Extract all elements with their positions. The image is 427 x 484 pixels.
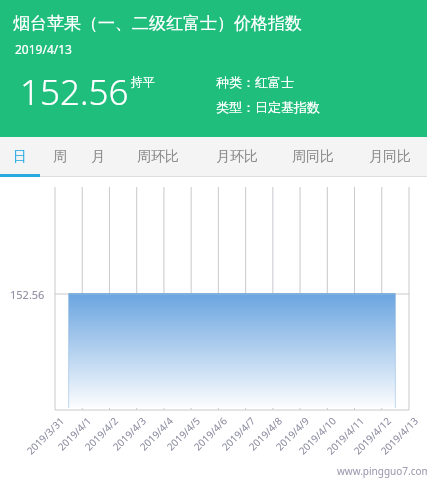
staticText: 2019/4/10 (295, 414, 339, 458)
staticText: 152.56 (20, 68, 129, 116)
staticText: 烟台苹果（一、二级红富士）价格指数 (13, 13, 302, 34)
staticText: 2019/3/31 (23, 414, 67, 458)
button[interactable]: 周环比 (127, 137, 189, 177)
staticText: 2019/4/9 (272, 414, 312, 454)
button[interactable]: 月同比 (359, 137, 421, 177)
staticText: 类型：日定基指数 (216, 99, 320, 115)
staticText: 2019/4/4 (136, 414, 176, 454)
staticText: 2019/4/13 (377, 414, 421, 458)
staticText: 2019/4/3 (109, 414, 149, 454)
staticText: 种类：红富士 (216, 74, 294, 90)
staticText: 2019/4/5 (163, 414, 203, 454)
staticText: 2019/4/1 (54, 414, 94, 454)
staticText: 2019/4/13 (15, 41, 72, 57)
button[interactable]: 月 (78, 137, 118, 177)
staticText: 日 (13, 148, 27, 166)
staticText: 周同比 (292, 148, 334, 166)
staticText: 周 (53, 148, 67, 166)
staticText: 月 (91, 148, 105, 166)
staticText: 2019/4/7 (218, 414, 258, 454)
staticText: 2019/4/12 (350, 414, 394, 458)
staticText: 152.56 (10, 287, 45, 302)
staticText: 2019/4/8 (245, 414, 285, 454)
staticText: www.pingguo7.com (337, 464, 427, 478)
button[interactable]: 周同比 (282, 137, 344, 177)
button[interactable]: 周 (40, 137, 80, 177)
button[interactable]: 日 (0, 137, 40, 177)
staticText: 2019/4/6 (190, 414, 230, 454)
staticText: 持平 (131, 74, 155, 89)
staticText: 周环比 (137, 148, 179, 166)
button[interactable]: 月环比 (206, 137, 268, 177)
staticText: 2019/4/2 (81, 414, 121, 454)
staticText: 2019/4/11 (323, 414, 367, 458)
staticText: 月环比 (216, 148, 258, 166)
staticText: 月同比 (369, 148, 411, 166)
